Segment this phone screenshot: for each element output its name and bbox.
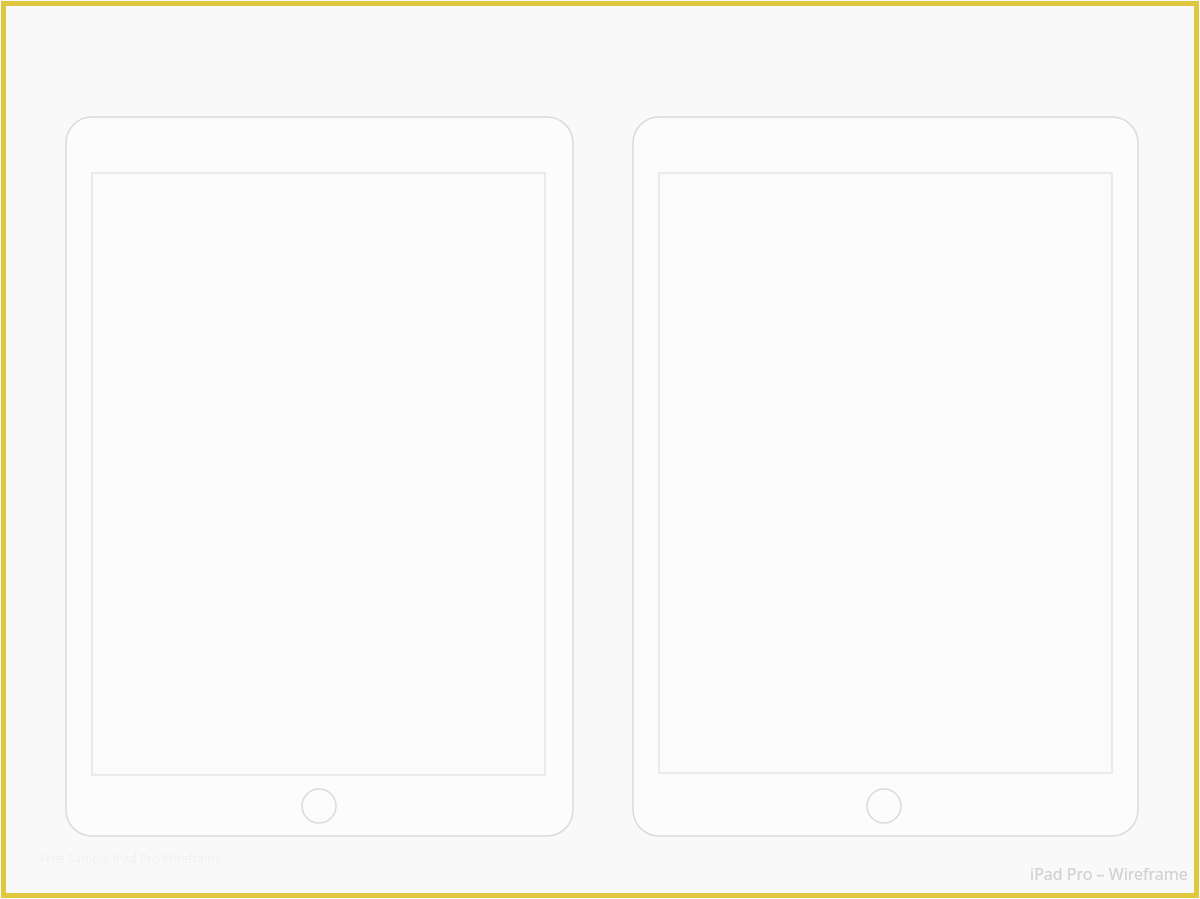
staticText: iPad Pro – Wireframe — [1030, 863, 1188, 885]
